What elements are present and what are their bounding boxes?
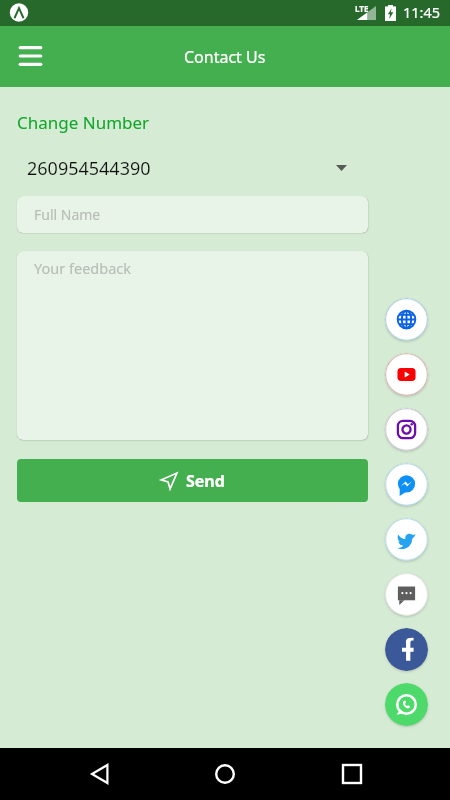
button[interactable]: Website [385, 298, 428, 341]
staticText: 260954544390 [27, 156, 151, 181]
staticText: Change Number [17, 111, 150, 134]
button[interactable]: Twitter [385, 518, 428, 561]
button[interactable]: Menu [10, 37, 50, 77]
button[interactable]: 260954544390 [17, 152, 368, 184]
button[interactable]: SMS [385, 573, 428, 616]
button[interactable]: Home [201, 750, 249, 798]
staticText: Contact Us [184, 46, 266, 68]
button[interactable]: YouTube [385, 353, 428, 396]
staticText: 11:45 [403, 2, 441, 22]
button[interactable]: WhatsApp [385, 683, 428, 726]
button[interactable]: Instagram [385, 408, 428, 451]
staticText: Send [186, 470, 225, 492]
button[interactable]: Your feedback [17, 251, 368, 440]
button[interactable]: Recents [328, 750, 376, 798]
button[interactable]: Messenger [385, 463, 428, 506]
button[interactable]: Back [77, 750, 125, 798]
staticText: Your feedback [34, 258, 131, 278]
staticText: Full Name [34, 205, 101, 224]
button[interactable]: Change Number [17, 111, 150, 134]
staticText: LTE [355, 3, 369, 14]
button[interactable]: Send [17, 459, 368, 502]
button[interactable]: Full Name [17, 196, 368, 233]
button[interactable]: Facebook [385, 628, 428, 671]
